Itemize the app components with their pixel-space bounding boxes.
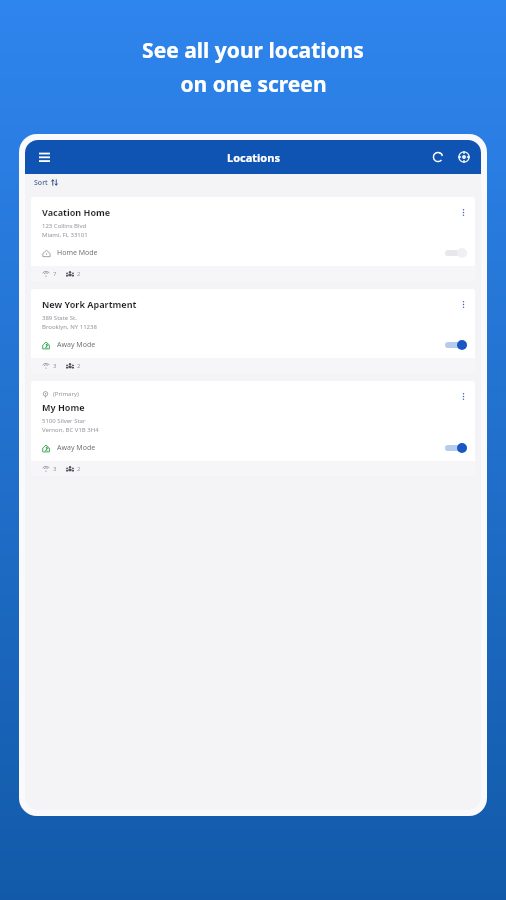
button[interactable]: Mode toggle	[445, 340, 467, 350]
staticText: Home Mode	[57, 248, 98, 258]
staticText: My Home	[42, 401, 85, 413]
staticText: New York Apartment	[42, 298, 137, 310]
staticText: See all your locations	[142, 36, 364, 65]
button[interactable]: New York Apartment	[31, 289, 475, 373]
staticText: 7	[53, 270, 57, 278]
staticText: 2	[77, 465, 81, 473]
button[interactable]: Refresh	[427, 146, 449, 168]
staticText: (Primary)	[53, 390, 79, 398]
staticText: 3	[53, 362, 57, 370]
staticText: Away Mode	[57, 340, 96, 350]
button[interactable]: Sort	[25, 174, 481, 191]
button[interactable]: Mode toggle	[445, 443, 467, 453]
button[interactable]: Settings	[453, 146, 475, 168]
staticText: 5100 Silver Star	[42, 417, 86, 425]
staticText: 389 State St.	[42, 314, 77, 322]
button[interactable]: Menu	[33, 146, 55, 168]
staticText: on one screen	[180, 70, 327, 99]
staticText: 123 Collins Blvd	[42, 222, 87, 230]
staticText: Brooklyn, NY 11238	[42, 323, 97, 331]
staticText: Miami, FL 33101	[42, 231, 88, 239]
button[interactable]: (Primary)	[31, 381, 475, 476]
button[interactable]: More options	[454, 203, 472, 221]
button[interactable]: More options	[454, 295, 472, 313]
staticText: Sort	[34, 178, 48, 188]
staticText: 3	[53, 465, 57, 473]
staticText: Vacation Home	[42, 206, 111, 218]
staticText: Vernon, BC V1B 3H4	[42, 426, 99, 434]
staticText: Away Mode	[57, 443, 96, 453]
staticText: Locations	[227, 150, 280, 165]
staticText: 2	[77, 270, 81, 278]
button[interactable]: More options	[454, 387, 472, 405]
button[interactable]: Vacation Home	[31, 197, 475, 281]
staticText: 2	[77, 362, 81, 370]
button[interactable]: Mode toggle	[445, 248, 467, 258]
